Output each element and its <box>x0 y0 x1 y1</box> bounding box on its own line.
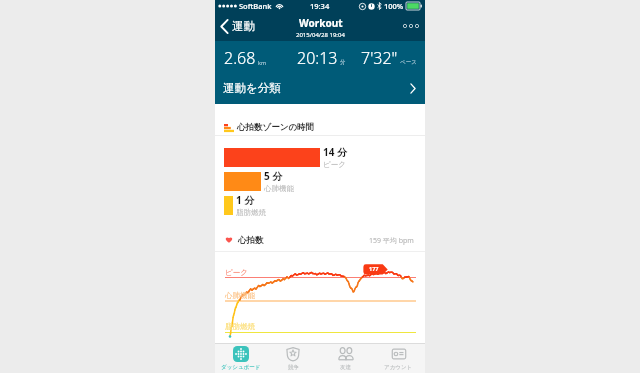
staticText: 1 分 <box>236 193 255 207</box>
staticText: 友達 <box>340 364 351 371</box>
staticText: アカウント <box>384 364 413 371</box>
staticText: 7'32" <box>361 47 398 69</box>
staticText: ダッシュボード <box>221 364 261 371</box>
staticText: km <box>258 59 267 66</box>
staticText: 心拍数ゾーンの時間 <box>237 122 315 133</box>
staticText: 心肺機能 <box>225 291 255 300</box>
staticText: 競争 <box>288 364 299 371</box>
button[interactable]: ダッシュボード <box>215 344 267 373</box>
staticText: 運動を分類 <box>223 81 281 95</box>
button[interactable]: 友達 <box>319 344 372 373</box>
button[interactable]: アカウント <box>372 344 425 373</box>
staticText: 14 分 <box>323 145 348 159</box>
staticText: 分 <box>340 59 346 66</box>
staticText: Workout <box>299 16 343 30</box>
staticText: ペース <box>400 59 417 66</box>
staticText: 2.68 <box>224 47 256 69</box>
staticText: 脂肪燃焼 <box>236 208 266 217</box>
staticText: SoftBank <box>239 1 272 11</box>
staticText: 2015/04/28 19:04 <box>296 31 345 39</box>
button[interactable]: 運動を分類 <box>215 72 425 104</box>
staticText: 心肺機能 <box>264 184 294 193</box>
staticText: 177 <box>369 265 379 272</box>
staticText: ピーク <box>323 160 346 169</box>
button[interactable]: More options <box>397 11 425 41</box>
staticText: 脂肪燃焼 <box>225 322 255 331</box>
staticText: 5 分 <box>264 169 283 183</box>
staticText: ピーク <box>225 268 248 277</box>
staticText: 19:34 <box>310 1 330 11</box>
button[interactable]: 運動 <box>215 11 261 41</box>
staticText: 20:13 <box>297 47 338 69</box>
staticText: 心拍数 <box>238 235 264 246</box>
button[interactable]: 競争 <box>267 344 319 373</box>
staticText: 159 平均 bpm <box>369 236 414 246</box>
staticText: 運動 <box>232 19 255 33</box>
staticText: 100% <box>384 1 404 11</box>
